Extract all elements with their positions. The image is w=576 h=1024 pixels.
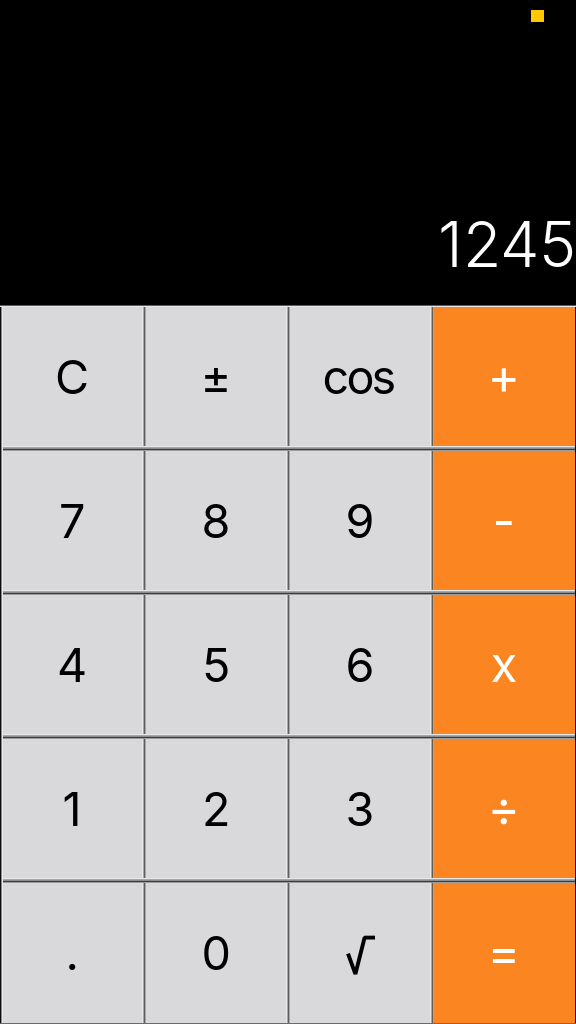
button[interactable]: 8 — [144, 448, 288, 592]
staticText: 0 — [201, 925, 230, 981]
staticText: ± — [200, 349, 231, 405]
button[interactable]: Decimal point — [0, 880, 144, 1024]
staticText: 1 — [62, 781, 81, 837]
button[interactable]: Plus minus — [144, 304, 288, 448]
staticText: = — [487, 922, 520, 982]
staticText: 1245 — [438, 206, 576, 282]
staticText: 6 — [345, 637, 374, 693]
button[interactable]: 2 — [144, 736, 288, 880]
staticText: 5 — [202, 637, 230, 693]
button[interactable]: 6 — [288, 592, 432, 736]
staticText: ÷ — [487, 778, 520, 838]
button[interactable]: Cosine — [288, 304, 432, 448]
staticText: + — [487, 346, 520, 406]
button[interactable]: Square root — [288, 880, 432, 1024]
staticText: . — [65, 925, 78, 981]
staticText: 2 — [202, 781, 230, 837]
button[interactable]: 1 — [0, 736, 144, 880]
staticText: x — [490, 634, 517, 694]
staticText: 4 — [57, 637, 87, 693]
staticText: - — [492, 490, 515, 550]
button[interactable]: Multiply — [432, 592, 576, 736]
button[interactable]: 0 — [144, 880, 288, 1024]
button[interactable]: Equals — [432, 880, 576, 1024]
staticText: 3 — [345, 781, 374, 837]
button[interactable]: 9 — [288, 448, 432, 592]
button[interactable]: 7 — [0, 448, 144, 592]
staticText: 9 — [345, 493, 374, 549]
staticText: C — [55, 349, 89, 405]
button[interactable]: Add — [432, 304, 576, 448]
button[interactable]: 3 — [288, 736, 432, 880]
button[interactable]: Divide — [432, 736, 576, 880]
button[interactable]: 4 — [0, 592, 144, 736]
button[interactable]: Subtract — [432, 448, 576, 592]
button[interactable]: Clear — [0, 304, 144, 448]
staticText: cos — [322, 349, 396, 405]
staticText: 7 — [59, 493, 85, 549]
button[interactable]: 5 — [144, 592, 288, 736]
staticText: 8 — [201, 493, 230, 549]
